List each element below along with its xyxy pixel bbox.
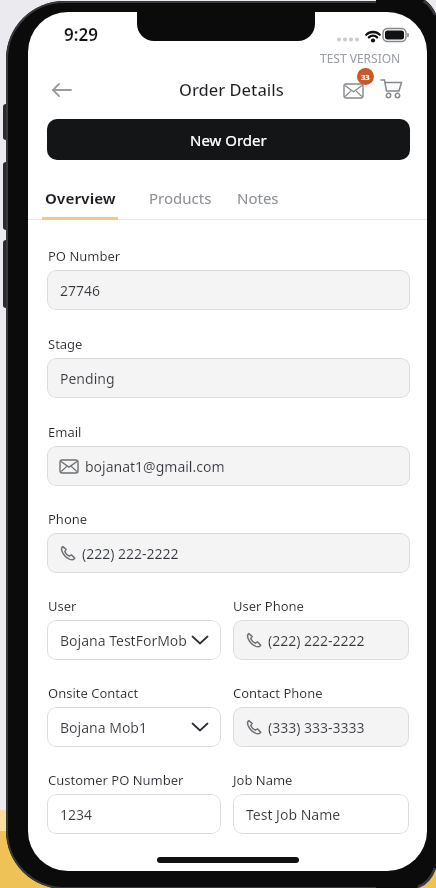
- staticText: 9:29: [64, 23, 98, 46]
- staticText: New Order: [190, 130, 267, 150]
- button[interactable]: Overview: [45, 188, 116, 208]
- staticText: Bojana TestForMob: [60, 631, 187, 650]
- button[interactable]: bojanat1@gmail.com: [47, 446, 410, 486]
- button[interactable]: Products: [149, 188, 212, 208]
- staticText: Stage: [48, 335, 83, 353]
- staticText: (222) 222-2222: [268, 631, 365, 650]
- staticText: 33: [361, 72, 370, 82]
- staticText: User: [48, 597, 77, 615]
- button[interactable]: 33: [340, 68, 376, 112]
- staticText: Order Details: [179, 78, 284, 100]
- staticText: 1234: [60, 805, 93, 824]
- button[interactable]: [46, 74, 78, 106]
- button[interactable]: Test Job Name: [233, 794, 409, 834]
- staticText: 27746: [60, 281, 101, 300]
- staticText: Bojana Mob1: [60, 718, 147, 737]
- staticText: (222) 222-2222: [82, 544, 179, 563]
- button[interactable]: Bojana TestForMob: [47, 620, 221, 660]
- button[interactable]: Pending: [47, 358, 410, 398]
- button[interactable]: (222) 222-2222: [233, 620, 409, 660]
- staticText: Email: [48, 423, 82, 441]
- staticText: Customer PO Number: [48, 771, 184, 789]
- staticText: Test Job Name: [246, 805, 341, 824]
- button[interactable]: [380, 76, 406, 102]
- staticText: Job Name: [233, 771, 293, 789]
- button[interactable]: 1234: [47, 794, 221, 834]
- staticText: Onsite Contact: [48, 684, 139, 702]
- button[interactable]: New Order: [47, 119, 410, 160]
- staticText: TEST VERSION: [320, 50, 401, 66]
- staticText: Pending: [60, 369, 115, 388]
- button[interactable]: 27746: [47, 270, 410, 310]
- button[interactable]: (222) 222-2222: [47, 533, 410, 573]
- button[interactable]: Notes: [237, 188, 279, 208]
- staticText: bojanat1@gmail.com: [85, 457, 225, 476]
- staticText: Contact Phone: [233, 684, 323, 702]
- staticText: (333) 333-3333: [268, 718, 365, 737]
- staticText: PO Number: [48, 247, 121, 265]
- staticText: Phone: [48, 510, 88, 528]
- staticText: User Phone: [233, 597, 304, 615]
- button[interactable]: Bojana Mob1: [47, 707, 221, 747]
- button[interactable]: (333) 333-3333: [233, 707, 409, 747]
